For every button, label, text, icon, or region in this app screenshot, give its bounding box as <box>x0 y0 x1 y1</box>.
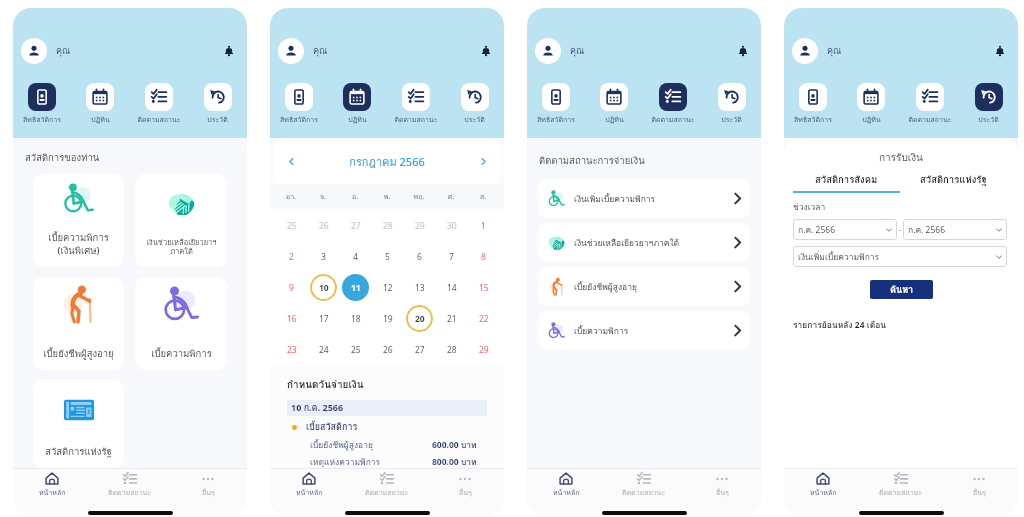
button[interactable]: สวัสดิการสังคม <box>793 172 900 193</box>
button[interactable]: Next month <box>476 154 490 168</box>
button[interactable]: อื่นๆ <box>940 469 1018 500</box>
button[interactable]: อื่นๆ <box>683 469 761 500</box>
staticText: เงินเพิ่มเบี้ยความพิการ <box>574 192 656 206</box>
button[interactable]: ติดตามสถานะ <box>862 469 940 500</box>
staticText: สิทธิสวัดิการ <box>537 114 575 125</box>
button[interactable]: 24 <box>310 336 337 363</box>
button[interactable]: เบี้ยความพิการ (เงินพิเศษ) <box>33 174 124 267</box>
button[interactable]: เงินช่วยเหลือเยียวยาฯ ภาคใต้ <box>135 174 227 267</box>
button[interactable]: Profile <box>535 38 561 64</box>
button[interactable]: 3 <box>310 243 337 270</box>
button[interactable]: 26 <box>310 212 337 239</box>
button[interactable]: อื่นๆ <box>426 469 504 500</box>
button[interactable]: 11 <box>342 274 369 301</box>
button[interactable]: Profile <box>792 38 818 64</box>
button[interactable]: 12 <box>374 274 401 301</box>
button[interactable]: 7 <box>438 243 465 270</box>
button[interactable]: 4 <box>342 243 369 270</box>
button[interactable]: 17 <box>310 305 337 332</box>
button[interactable]: ก.ค. 2566 <box>793 219 897 240</box>
button[interactable]: ประวัติ <box>445 83 504 125</box>
button[interactable]: Notifications <box>735 43 751 59</box>
button[interactable]: 8 <box>470 243 497 270</box>
button[interactable]: หน้าหลัก <box>270 469 348 500</box>
button[interactable]: ติดตามสถานะ <box>129 83 188 125</box>
staticText: 19 <box>383 313 393 325</box>
button[interactable]: เงินเพิ่มเบี้ยความพิการ <box>538 179 750 218</box>
button[interactable]: 25 <box>342 336 369 363</box>
button[interactable]: ติดตามสถานะ <box>643 83 702 125</box>
button[interactable]: 10 <box>310 274 337 301</box>
button[interactable]: ค้นหา <box>870 280 933 299</box>
button[interactable]: ประวัติ <box>702 83 761 125</box>
button[interactable]: 28 <box>374 212 401 239</box>
button[interactable]: Profile <box>278 38 304 64</box>
staticText: ติดตามสถานะ <box>908 114 952 125</box>
button[interactable]: เบี้ยความพิการ <box>135 277 227 370</box>
button[interactable]: หน้าหลัก <box>527 469 605 500</box>
button[interactable]: 5 <box>374 243 401 270</box>
button[interactable]: สิทธิสวัดิการ <box>784 83 842 125</box>
button[interactable]: 1 <box>470 212 497 239</box>
staticText: ก.ค. 2566 <box>798 223 836 237</box>
button[interactable]: 28 <box>438 336 465 363</box>
button[interactable]: หน้าหลัก <box>13 469 91 500</box>
button[interactable]: Notifications <box>992 43 1008 59</box>
button[interactable]: 30 <box>438 212 465 239</box>
staticText: 30 <box>447 220 457 232</box>
button[interactable]: 18 <box>342 305 369 332</box>
button[interactable]: 29 <box>406 212 433 239</box>
button[interactable]: สิทธิสวัดิการ <box>527 83 585 125</box>
button[interactable]: ปฏิทิน <box>842 83 900 125</box>
staticText: 15 <box>479 282 489 294</box>
button[interactable]: ประวัติ <box>188 83 247 125</box>
button[interactable]: 26 <box>374 336 401 363</box>
button[interactable]: 6 <box>406 243 433 270</box>
button[interactable]: Notifications <box>478 43 494 59</box>
button[interactable]: 23 <box>278 336 305 363</box>
button[interactable]: Profile <box>21 38 47 64</box>
staticText: หน้าหลัก <box>553 487 580 498</box>
button[interactable]: ติดตามสถานะ <box>900 83 959 125</box>
button[interactable]: ปฏิทิน <box>585 83 643 125</box>
button[interactable]: ติดตามสถานะ <box>91 469 169 500</box>
button[interactable]: Notifications <box>221 43 237 59</box>
staticText: 25 <box>351 344 361 356</box>
button[interactable]: ประวัติ <box>959 83 1018 125</box>
button[interactable]: 21 <box>438 305 465 332</box>
button[interactable]: ปฏิทิน <box>71 83 129 125</box>
staticText: เบี้ยความพิการ (เงินพิเศษ) <box>48 230 109 258</box>
button[interactable]: 29 <box>470 336 497 363</box>
button[interactable]: 22 <box>470 305 497 332</box>
button[interactable]: ปฏิทิน <box>328 83 386 125</box>
button[interactable]: 13 <box>406 274 433 301</box>
button[interactable]: 25 <box>278 212 305 239</box>
button[interactable]: 19 <box>374 305 401 332</box>
button[interactable]: เบี้ยยังชีพผู้สูงอายุ <box>33 277 124 370</box>
button[interactable]: 16 <box>278 305 305 332</box>
button[interactable]: 9 <box>278 274 305 301</box>
button[interactable]: 20 <box>406 305 433 332</box>
button[interactable]: 2 <box>278 243 305 270</box>
button[interactable]: อื่นๆ <box>169 469 247 500</box>
button[interactable]: 14 <box>438 274 465 301</box>
button[interactable]: สิทธิสวัดิการ <box>13 83 71 125</box>
button[interactable]: ก.ค. 2566 <box>903 219 1007 240</box>
staticText: 7 <box>449 251 454 263</box>
button[interactable]: หน้าหลัก <box>784 469 862 500</box>
button[interactable]: ติดตามสถานะ <box>348 469 426 500</box>
button[interactable]: ติดตามสถานะ <box>605 469 683 500</box>
button[interactable]: 27 <box>406 336 433 363</box>
button[interactable]: เบี้ยความพิการ <box>538 311 750 350</box>
button[interactable]: เงินเพิ่มเบี้ยความพิการ <box>793 246 1007 267</box>
button[interactable]: ติดตามสถานะ <box>386 83 445 125</box>
button[interactable]: สิทธิสวัดิการ <box>270 83 328 125</box>
button[interactable]: Previous month <box>284 154 298 168</box>
button[interactable]: เบี้ยยังชีพผู้สูงอายุ <box>538 267 750 306</box>
button[interactable]: 15 <box>470 274 497 301</box>
button[interactable]: เงินช่วยเหลือเยียวยาฯภาคใต้ <box>538 223 750 262</box>
button[interactable]: 27 <box>342 212 369 239</box>
button[interactable]: สวัสดิการแห่งรัฐ <box>33 380 124 468</box>
staticText: 9 <box>289 282 294 294</box>
button[interactable]: สวัสดิการแห่งรัฐ <box>900 172 1007 187</box>
